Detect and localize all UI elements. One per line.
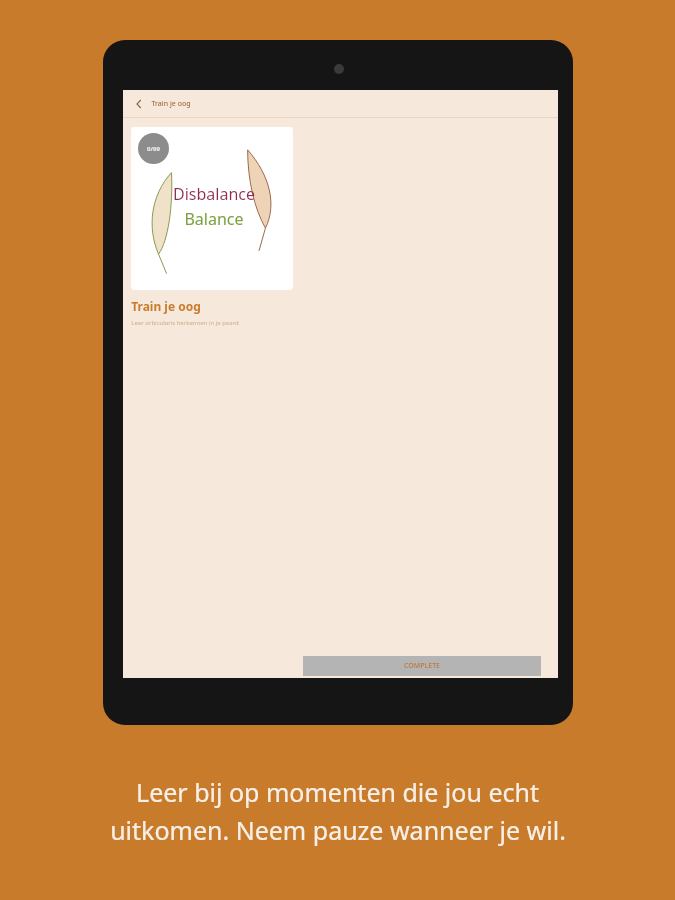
button[interactable]: Back — [132, 97, 146, 111]
staticText: uitkomen. Neem pauze wanneer je wil. — [110, 813, 566, 847]
staticText: Train je oog — [151, 99, 191, 109]
staticText: Train je oog — [131, 298, 201, 314]
staticText: Balance — [184, 208, 244, 230]
staticText: COMPLETE — [404, 661, 440, 671]
staticText: Disbalance — [173, 183, 255, 205]
button[interactable]: Back — [123, 90, 558, 117]
button[interactable]: Disbalance — [131, 127, 293, 327]
staticText: Leer orbicularis herkennen in je paard — [131, 319, 239, 327]
staticText: Leer bij op momenten die jou echt — [136, 775, 539, 809]
button[interactable]: COMPLETE — [303, 656, 541, 676]
staticText: 0/69 — [147, 145, 160, 153]
